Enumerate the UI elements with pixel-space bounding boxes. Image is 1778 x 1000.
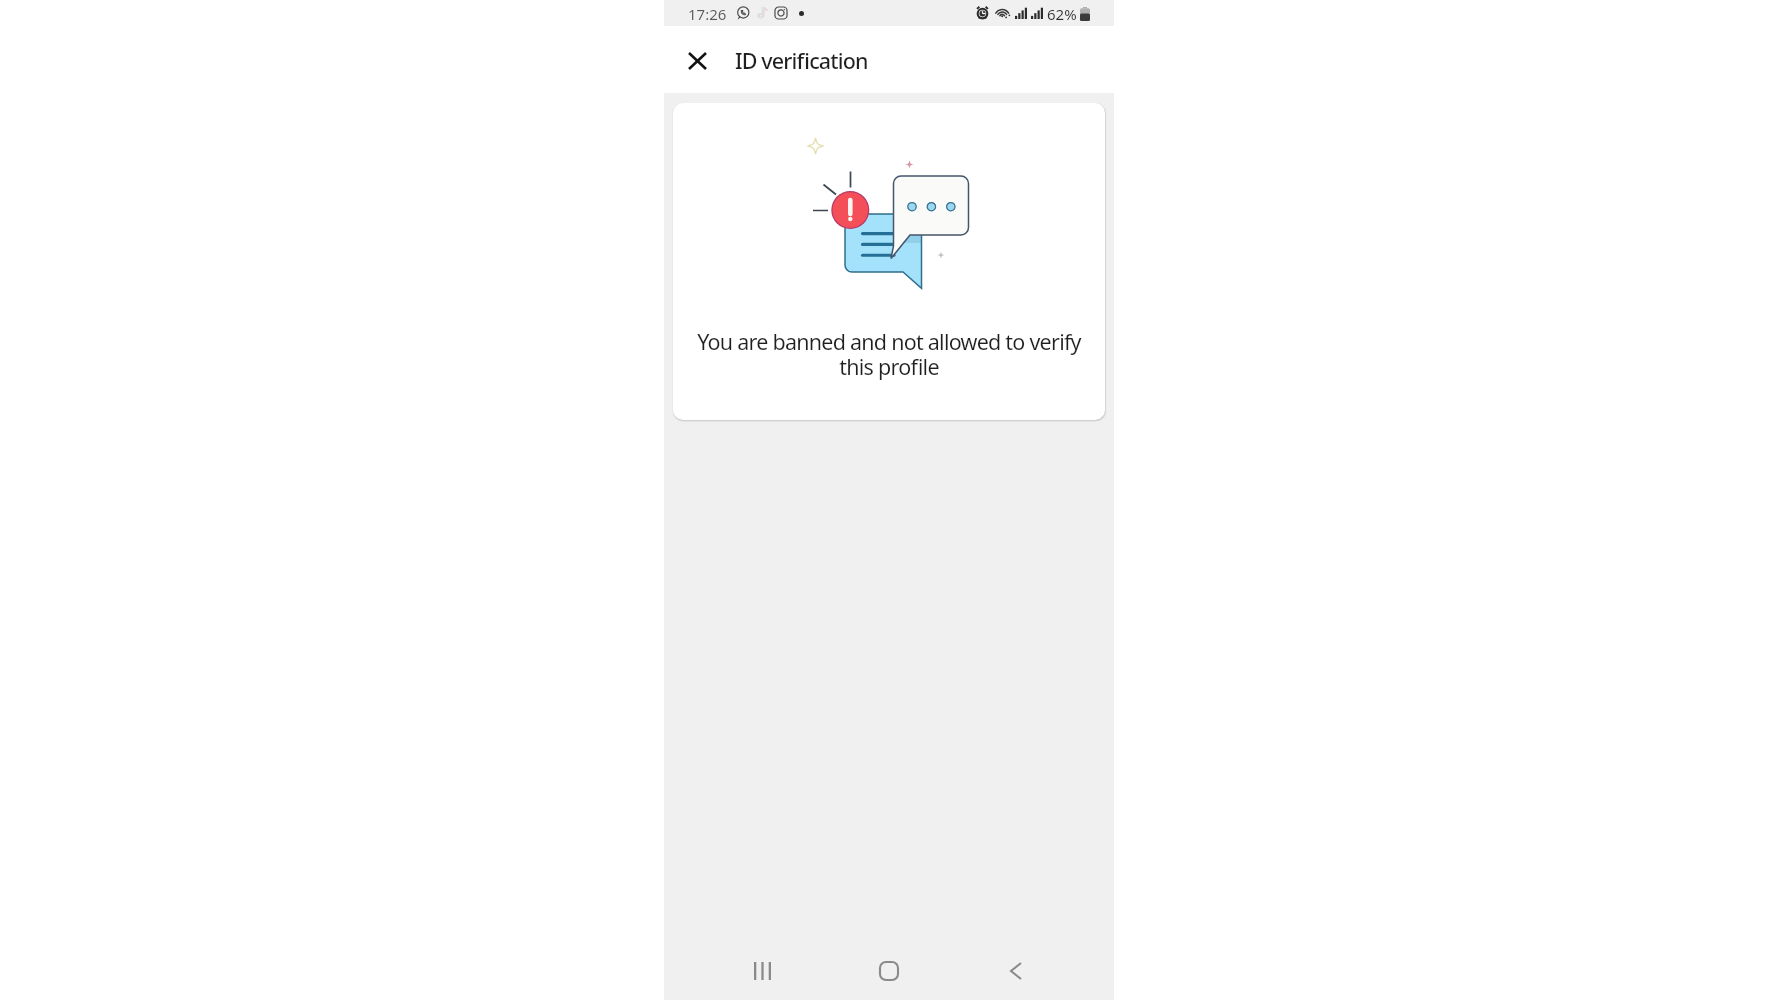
button[interactable]: Recent apps [738,947,786,995]
staticText: 62% [1047,4,1077,24]
button[interactable]: Close [675,39,719,83]
staticText: ID verification [735,46,868,75]
button[interactable]: Home [865,947,913,995]
staticText: You are banned and not allowed to verify… [689,327,1089,381]
button[interactable]: Back [992,947,1040,995]
staticText: 17:26 [688,4,727,24]
